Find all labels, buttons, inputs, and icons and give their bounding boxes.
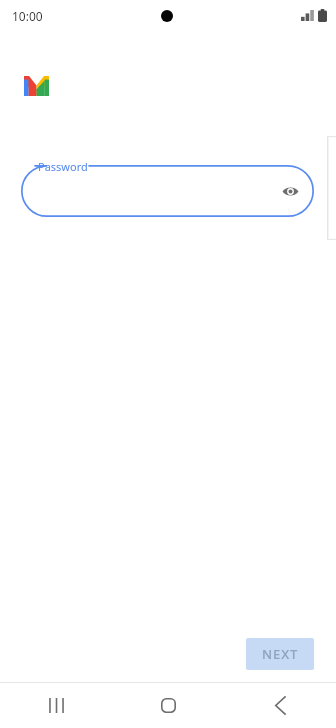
staticText: NEXT (262, 645, 299, 663)
button[interactable]: Show password (275, 176, 305, 206)
staticText: Password (38, 159, 88, 174)
button[interactable]: Recent apps (0, 683, 112, 728)
button[interactable]: Home (112, 683, 224, 728)
button[interactable]: Back (224, 683, 336, 728)
staticText: 10:00 (12, 8, 43, 24)
button[interactable]: NEXT (246, 638, 314, 670)
button[interactable]: Password (21, 165, 314, 217)
